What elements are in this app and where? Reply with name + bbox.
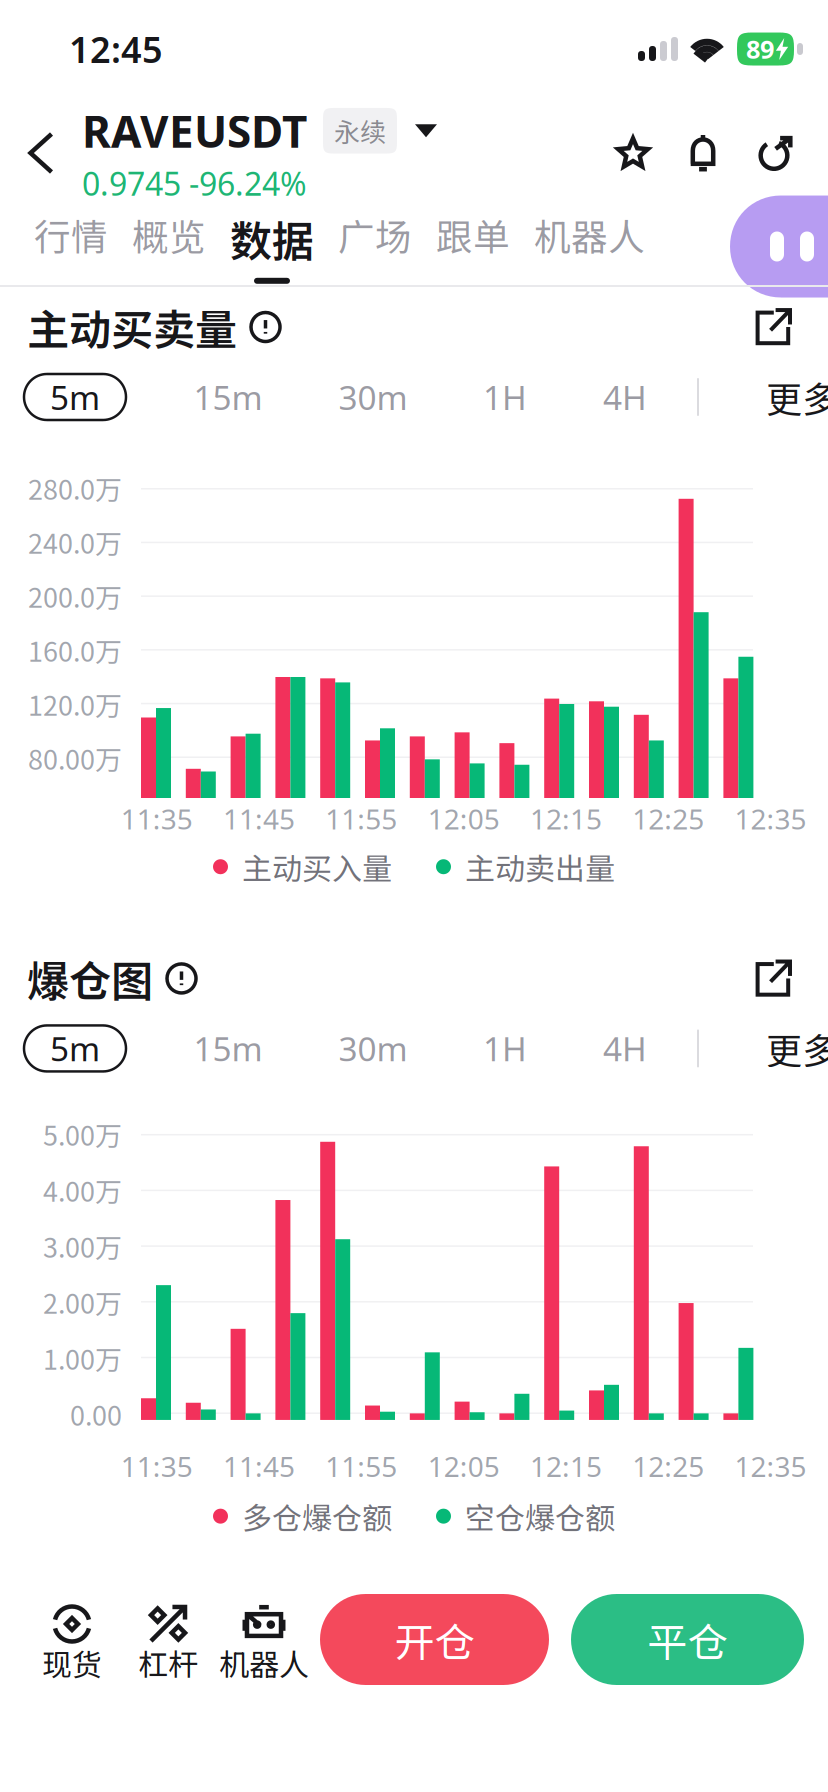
- button[interactable]: Open full chart: [738, 944, 806, 1012]
- staticText: 0.9745 -96.24%: [82, 162, 307, 204]
- staticText: 机器人: [534, 208, 645, 261]
- staticText: 11:45: [223, 800, 295, 837]
- staticText: 30m: [338, 1026, 407, 1071]
- staticText: 机器人: [219, 1641, 309, 1684]
- staticText: 现货: [42, 1641, 102, 1684]
- staticText: 更多: [766, 371, 828, 423]
- staticText: 0.00: [70, 1394, 122, 1433]
- button[interactable]: 30m: [322, 374, 424, 420]
- staticText: 15m: [193, 375, 262, 419]
- staticText: 2.00万: [43, 1282, 122, 1321]
- button[interactable]: 现货: [24, 1589, 120, 1684]
- button[interactable]: 4H: [574, 374, 676, 420]
- button[interactable]: 15m: [177, 374, 279, 420]
- staticText: 主动买卖量: [27, 297, 237, 357]
- staticText: 11:45: [223, 1447, 295, 1485]
- staticText: 200.0万: [28, 576, 122, 615]
- staticText: 80.00万: [28, 738, 122, 777]
- button[interactable]: 更多: [766, 1017, 828, 1079]
- staticText: 12:25: [632, 800, 704, 837]
- staticText: 广场: [338, 208, 412, 261]
- button[interactable]: Open full chart: [738, 293, 806, 361]
- button[interactable]: 更多: [766, 366, 828, 428]
- staticText: 12:35: [734, 800, 806, 837]
- button[interactable]: 开仓: [320, 1594, 549, 1685]
- staticText: 5m: [50, 375, 100, 419]
- staticText: 爆仓图: [27, 948, 153, 1009]
- button[interactable]: Back: [0, 103, 82, 203]
- button[interactable]: 行情: [22, 208, 120, 285]
- staticText: 12:15: [530, 800, 602, 837]
- staticText: 12:05: [428, 1447, 500, 1485]
- staticText: 杠杆: [138, 1641, 198, 1684]
- button[interactable]: 1H: [454, 374, 556, 420]
- staticText: 1H: [483, 1026, 527, 1071]
- staticText: 160.0万: [28, 630, 122, 669]
- button[interactable]: 跟单: [424, 208, 522, 285]
- staticText: 12:45: [69, 25, 163, 73]
- staticText: 1H: [483, 375, 527, 419]
- button[interactable]: 5m: [24, 1025, 126, 1071]
- staticText: 12:05: [428, 800, 500, 837]
- staticText: 120.0万: [28, 684, 122, 723]
- button[interactable]: 概览: [120, 208, 218, 285]
- button[interactable]: 5m: [24, 374, 126, 420]
- button[interactable]: 平仓: [571, 1594, 804, 1685]
- staticText: 12:35: [734, 1447, 806, 1485]
- staticText: 平仓: [647, 1610, 727, 1668]
- staticText: 更多: [766, 1022, 828, 1074]
- button[interactable]: 数据: [218, 208, 326, 285]
- staticText: 数据: [230, 208, 314, 269]
- staticText: 280.0万: [28, 468, 122, 507]
- button[interactable]: 15m: [177, 1025, 279, 1071]
- staticText: 11:55: [325, 800, 397, 837]
- button[interactable]: 4H: [574, 1025, 676, 1071]
- staticText: 主动卖出量: [465, 845, 615, 888]
- staticText: 11:35: [121, 1447, 193, 1485]
- button[interactable]: AI assistant: [730, 195, 828, 297]
- button[interactable]: 广场: [326, 208, 424, 285]
- staticText: 空仓爆仓额: [465, 1494, 615, 1538]
- button[interactable]: Price alert: [668, 111, 738, 195]
- staticText: 240.0万: [28, 522, 122, 561]
- staticText: 永续: [334, 112, 386, 149]
- button[interactable]: 杠杆: [120, 1589, 216, 1684]
- staticText: 12:15: [530, 1447, 602, 1485]
- staticText: 主动买入量: [242, 845, 392, 888]
- staticText: 5m: [50, 1026, 100, 1071]
- button[interactable]: Share: [738, 111, 810, 195]
- staticText: 多仓爆仓额: [242, 1494, 392, 1538]
- staticText: 1.00万: [43, 1338, 122, 1377]
- staticText: 概览: [132, 208, 206, 261]
- staticText: RAVEUSDT: [82, 101, 307, 160]
- button[interactable]: 1H: [454, 1025, 556, 1071]
- staticText: 4H: [603, 375, 647, 419]
- staticText: 89: [746, 32, 774, 66]
- staticText: 开仓: [394, 1610, 474, 1668]
- staticText: 跟单: [436, 208, 510, 261]
- staticText: 4.00万: [43, 1170, 122, 1209]
- staticText: 5.00万: [43, 1114, 122, 1153]
- staticText: 15m: [193, 1026, 262, 1071]
- staticText: 11:55: [325, 1447, 397, 1485]
- staticText: 3.00万: [43, 1226, 122, 1265]
- staticText: 11:35: [121, 800, 193, 837]
- button[interactable]: 机器人: [216, 1589, 312, 1684]
- button[interactable]: 机器人: [522, 208, 657, 285]
- button[interactable]: Add to favourites: [598, 111, 668, 195]
- staticText: 4H: [603, 1026, 647, 1071]
- staticText: 行情: [34, 208, 108, 261]
- staticText: 12:25: [632, 1447, 704, 1485]
- button[interactable]: 30m: [322, 1025, 424, 1071]
- staticText: 30m: [338, 375, 407, 419]
